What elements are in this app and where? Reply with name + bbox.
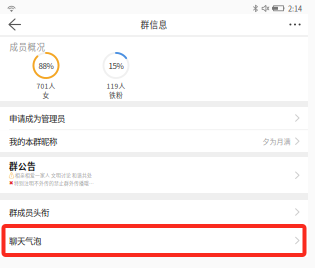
staticText: 聊天气泡 bbox=[9, 234, 41, 247]
button[interactable]: 聊天气泡 bbox=[0, 224, 308, 257]
staticText: 群成员头衔 bbox=[9, 206, 49, 218]
button[interactable]: 申请成为管理员 bbox=[0, 107, 308, 129]
staticText: 群信息 bbox=[140, 18, 167, 31]
staticText: 铁粉 bbox=[109, 90, 123, 100]
staticText: 群公告 bbox=[9, 160, 36, 172]
staticText: 15% bbox=[108, 60, 123, 71]
staticText: 特别注明不外传的禁止群外传播哦… bbox=[14, 179, 94, 186]
staticText: 申请成为管理员 bbox=[9, 112, 65, 124]
staticText: ✖ bbox=[9, 180, 13, 186]
staticText: 夕为月满 bbox=[263, 136, 291, 146]
staticText: 相亲相爱一家人 文明讨论 和谐共处 bbox=[15, 171, 92, 178]
staticText: 我的本群昵称 bbox=[9, 135, 57, 147]
staticText: 701人 bbox=[36, 81, 55, 91]
staticText: 119人 bbox=[106, 81, 125, 91]
staticText: ⚠ bbox=[9, 171, 14, 179]
staticText: 女 bbox=[42, 90, 49, 100]
button[interactable]: 我的本群昵称 bbox=[0, 130, 308, 152]
staticText: 成员概况 bbox=[9, 40, 45, 53]
button[interactable]: 返回 bbox=[0, 14, 31, 35]
button[interactable]: 更多 bbox=[279, 14, 308, 35]
button[interactable]: 群成员头衔 bbox=[0, 200, 308, 224]
staticText: 2:14 bbox=[288, 3, 302, 14]
staticText: 88% bbox=[38, 60, 53, 71]
button[interactable]: 群公告 bbox=[0, 157, 308, 193]
